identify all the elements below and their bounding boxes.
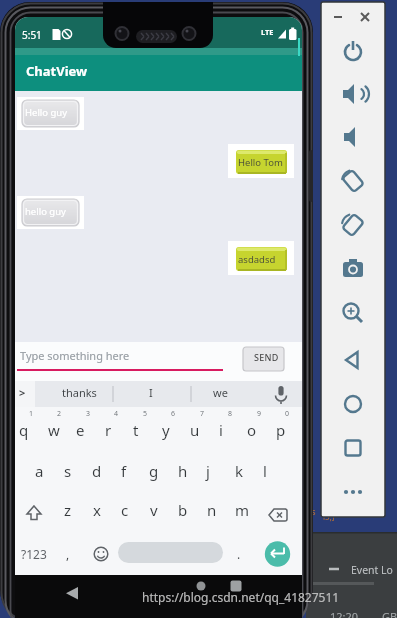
staticText: g [149, 461, 159, 481]
button[interactable] [51, 577, 89, 605]
button[interactable] [255, 457, 282, 487]
button[interactable] [339, 123, 367, 151]
button[interactable] [339, 255, 367, 283]
button[interactable] [215, 577, 253, 605]
button[interactable] [118, 542, 223, 572]
button[interactable] [85, 496, 112, 526]
staticText: b [178, 500, 188, 520]
button[interactable] [236, 150, 287, 174]
staticText: 1 [29, 409, 34, 419]
staticText: r [105, 420, 112, 440]
button[interactable] [22, 100, 79, 127]
button[interactable] [198, 457, 225, 487]
staticText: n [207, 500, 217, 520]
staticText: f [121, 461, 127, 481]
button[interactable] [236, 247, 287, 271]
button[interactable] [17, 539, 47, 569]
button[interactable] [339, 390, 367, 418]
button[interactable] [339, 211, 367, 239]
staticText: h [178, 461, 188, 481]
staticText: thanks [62, 385, 97, 400]
staticText: 12:20 [330, 609, 359, 618]
staticText: k [235, 461, 244, 481]
button[interactable] [15, 381, 35, 407]
staticText: y [162, 420, 170, 440]
button[interactable] [358, 10, 372, 24]
button[interactable] [113, 457, 140, 487]
staticText: 4 [114, 409, 119, 419]
button[interactable] [154, 413, 181, 443]
staticText: Type something here [20, 348, 130, 363]
staticText: , [66, 546, 70, 562]
button[interactable] [262, 541, 292, 571]
staticText: 5 [143, 409, 148, 419]
button[interactable] [339, 167, 367, 195]
button[interactable] [339, 36, 367, 64]
staticText: 7 [200, 409, 205, 419]
staticText: 8 [228, 409, 233, 419]
staticText: . [237, 546, 241, 562]
button[interactable] [56, 457, 83, 487]
staticText: p [276, 420, 286, 440]
staticText: hello guy [25, 205, 66, 218]
staticText: > [19, 385, 26, 400]
staticText: o [247, 420, 257, 440]
button[interactable] [227, 457, 254, 487]
button[interactable] [170, 496, 197, 526]
staticText: m [235, 500, 250, 520]
button[interactable] [40, 413, 67, 443]
button[interactable] [125, 413, 152, 443]
button[interactable] [56, 496, 83, 526]
staticText: 3 [86, 409, 91, 419]
button[interactable] [243, 347, 284, 371]
button[interactable] [84, 457, 111, 487]
staticText: Event Lo [351, 563, 393, 577]
button[interactable] [339, 478, 367, 506]
button[interactable] [68, 413, 95, 443]
staticText: asdadsd [238, 253, 276, 266]
staticText: Hello guy [25, 106, 68, 119]
button[interactable] [331, 10, 345, 24]
button[interactable] [211, 413, 238, 443]
staticText: 2 [57, 409, 62, 419]
button[interactable] [227, 496, 254, 526]
staticText: l [263, 461, 267, 481]
button[interactable] [142, 496, 169, 526]
staticText: w [48, 420, 60, 440]
button[interactable] [182, 413, 209, 443]
staticText: 9 [257, 409, 262, 419]
staticText: x [93, 500, 101, 520]
staticText: GB [382, 609, 397, 618]
staticText: i5;] [323, 511, 335, 522]
staticText: 6 [171, 409, 176, 419]
staticText: https://blog.csdn.net/qq_41827511 [142, 589, 340, 605]
button[interactable] [22, 199, 79, 226]
staticText: u [190, 420, 200, 440]
staticText: j [206, 461, 210, 481]
staticText: a [35, 461, 44, 481]
staticText: 5:51 [22, 28, 42, 42]
button[interactable] [15, 413, 38, 443]
button[interactable] [199, 496, 226, 526]
staticText: i [219, 420, 223, 440]
button[interactable] [268, 413, 295, 443]
staticText: LTE [261, 27, 274, 37]
button[interactable] [113, 496, 140, 526]
button[interactable] [141, 457, 168, 487]
button[interactable] [239, 413, 266, 443]
button[interactable] [97, 413, 124, 443]
button[interactable] [339, 299, 367, 327]
staticText: ChatView [26, 62, 88, 80]
button[interactable] [339, 434, 367, 462]
staticText: t [133, 420, 139, 440]
button[interactable] [27, 457, 54, 487]
staticText: SEND [254, 351, 279, 363]
button[interactable] [339, 346, 367, 374]
staticText: 0 [285, 409, 290, 419]
staticText: ?123 [21, 546, 47, 562]
button[interactable] [137, 577, 175, 605]
button[interactable] [339, 80, 367, 108]
staticText: q [19, 420, 29, 440]
button[interactable] [170, 457, 197, 487]
staticText: we [213, 385, 228, 400]
